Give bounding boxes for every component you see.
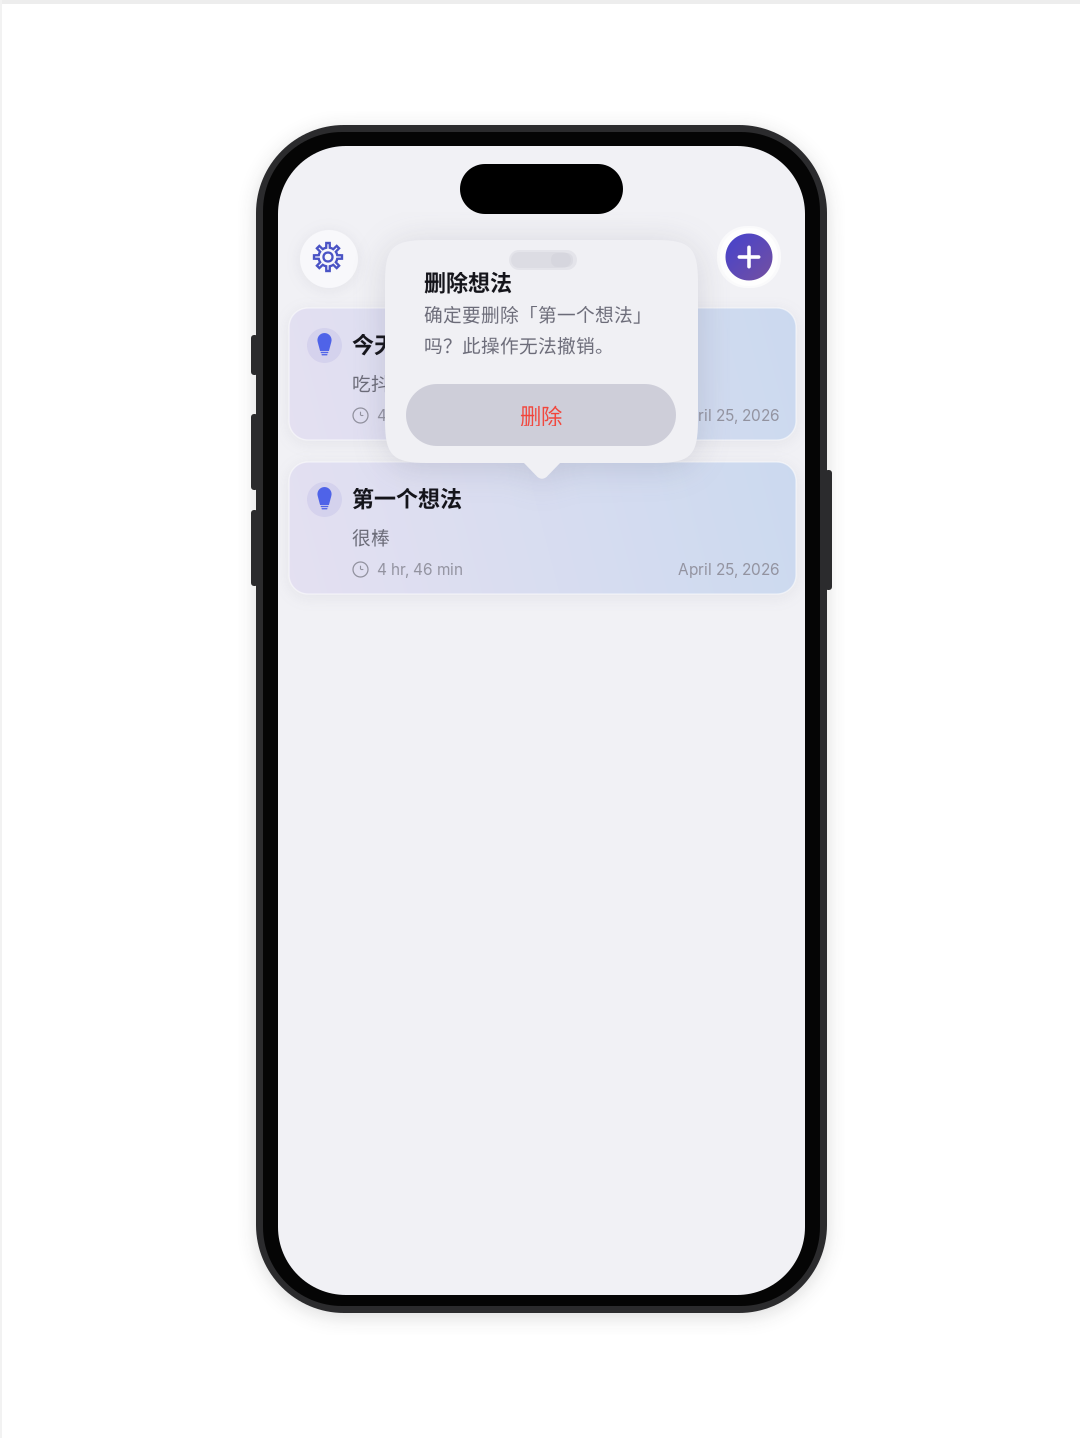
button[interactable]: 第一个想法 [289, 462, 796, 594]
staticText: 4 hr, 46 min [377, 406, 463, 425]
button[interactable]: New idea [717, 226, 781, 288]
staticText: 很棒 [352, 523, 390, 550]
staticText: April 25, 2026 [678, 560, 780, 579]
staticText: 确定要删除「第一个想法」 [424, 300, 652, 327]
staticText: 4 hr, 46 min [377, 560, 463, 579]
staticText: April 25, 2026 [678, 406, 780, 425]
staticText: 删除 [520, 400, 562, 430]
staticText: 第一个想法 [352, 481, 462, 513]
button[interactable]: 删除 [406, 384, 676, 446]
staticText: 吃抖音 [352, 369, 409, 396]
staticText: 今天的想法 [352, 327, 462, 359]
button[interactable]: Settings [300, 230, 358, 288]
staticText: 删除想法 [424, 265, 512, 297]
staticText: 我的想法 [499, 241, 583, 271]
button[interactable]: 今天的想法 [289, 308, 796, 440]
staticText: 吗？此操作无法撤销。 [424, 331, 614, 358]
